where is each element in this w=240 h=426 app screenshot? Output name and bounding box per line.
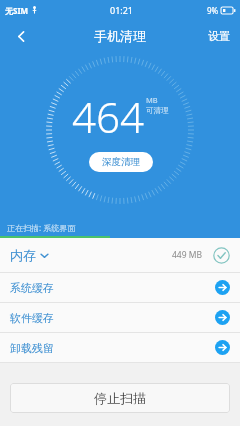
- staticText: 设置: [208, 29, 230, 43]
- staticText: 464: [72, 88, 144, 145]
- staticText: 正在扫描: 系统界面: [7, 222, 76, 233]
- button[interactable]: 深度清理: [89, 152, 153, 172]
- staticText: 449 MB: [172, 249, 203, 261]
- button[interactable]: Back: [0, 20, 42, 52]
- staticText: 深度清理: [102, 156, 140, 168]
- staticText: 9%: [207, 5, 219, 16]
- button[interactable]: Selected: [213, 247, 230, 264]
- other: Scanning 卸载残留: [215, 340, 230, 355]
- button[interactable]: 软件缓存: [0, 303, 240, 332]
- other: Scanning 软件缓存: [215, 310, 230, 325]
- staticText: 软件缓存: [10, 311, 54, 325]
- staticText: MB: [146, 95, 158, 105]
- staticText: 系统缓存: [10, 281, 54, 295]
- staticText: 内存: [10, 247, 36, 263]
- staticText: 卸载残留: [10, 341, 54, 355]
- button[interactable]: 内存: [0, 238, 240, 272]
- button[interactable]: 卸载残留: [0, 333, 240, 362]
- other: Scanning 系统缓存: [215, 280, 230, 295]
- staticText: 可清理: [146, 106, 169, 115]
- button[interactable]: 设置: [198, 20, 240, 52]
- staticText: 停止扫描: [94, 390, 146, 406]
- staticText: 01:21: [110, 4, 134, 16]
- staticText: 无SIM: [5, 5, 29, 16]
- button[interactable]: 停止扫描: [10, 383, 230, 413]
- button[interactable]: 系统缓存: [0, 273, 240, 302]
- staticText: 手机清理: [94, 28, 146, 44]
